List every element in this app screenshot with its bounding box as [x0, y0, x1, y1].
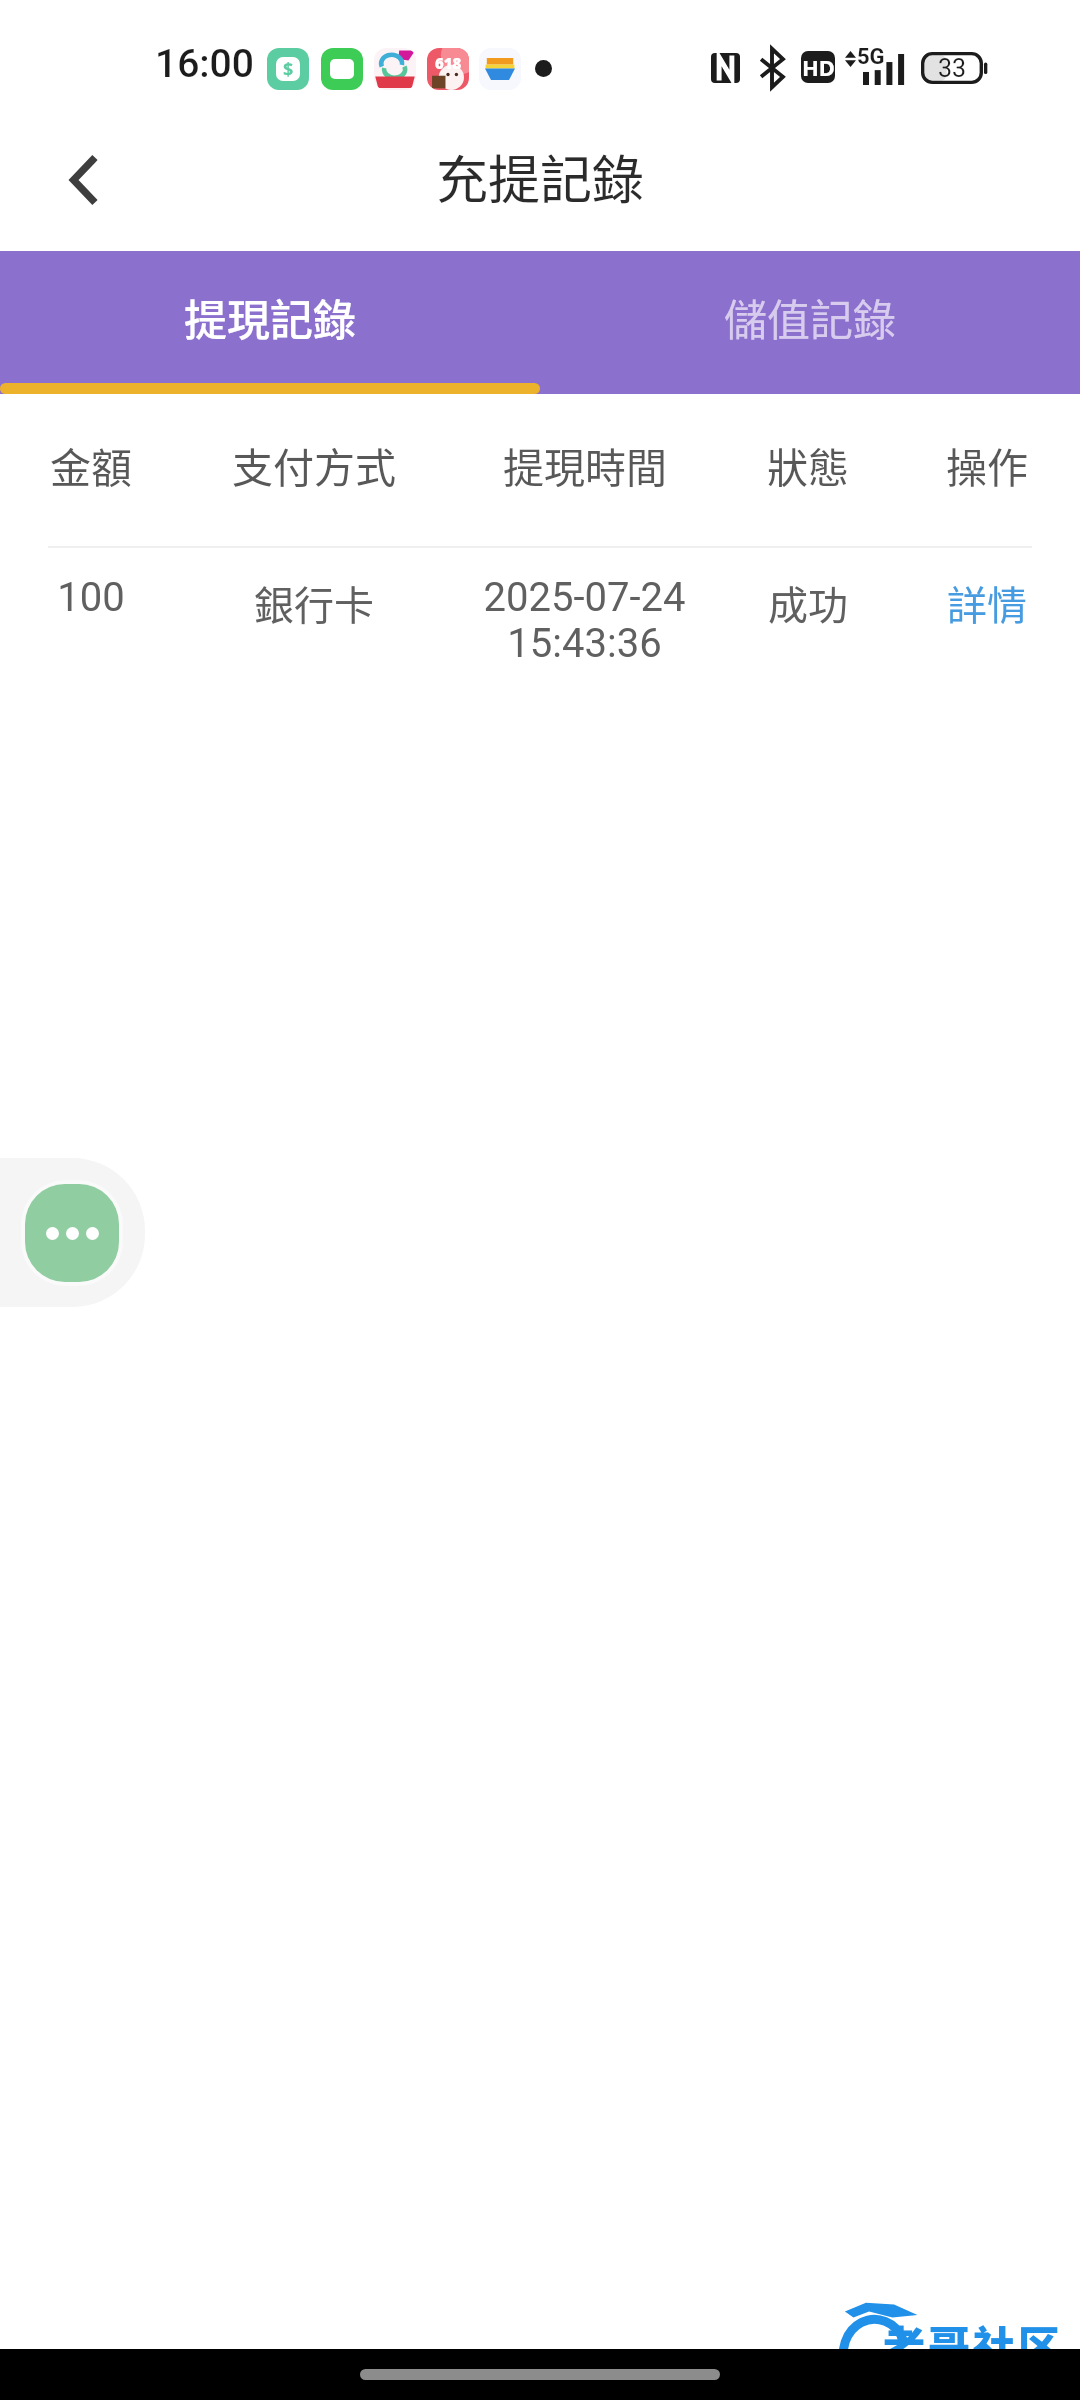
staticText: 5G [857, 44, 885, 70]
staticText: 金額 [50, 435, 132, 494]
staticText: $ [283, 57, 294, 81]
staticText: 成功 [768, 574, 848, 632]
staticText: 提現記錄 [184, 286, 356, 348]
staticText: 老哥社区 [883, 2313, 1064, 2374]
staticText: 100 [57, 574, 125, 621]
staticText: 狀態 [767, 435, 849, 494]
staticText: 儲值記錄 [724, 286, 896, 348]
staticText: 充提記錄 [436, 139, 645, 214]
staticText: 16:00 [155, 41, 254, 87]
staticText: 提現時間 [503, 435, 667, 494]
staticText: 銀行卡 [254, 574, 374, 632]
button[interactable]: Assistive menu [25, 1184, 119, 1282]
staticText: 支付方式 [232, 435, 396, 494]
button[interactable]: 提現記錄 [0, 251, 540, 394]
button[interactable]: Back [43, 140, 123, 220]
staticText: HD [802, 52, 835, 82]
staticText: 33 [938, 54, 967, 83]
staticText: 2025-07-24 15:43:36 [446, 574, 723, 667]
button[interactable]: 儲值記錄 [540, 251, 1080, 394]
staticText: 618 [435, 53, 462, 73]
staticText: 詳情 [947, 574, 1027, 632]
button[interactable]: 100 [0, 548, 1080, 708]
staticText: 操作 [946, 435, 1028, 494]
